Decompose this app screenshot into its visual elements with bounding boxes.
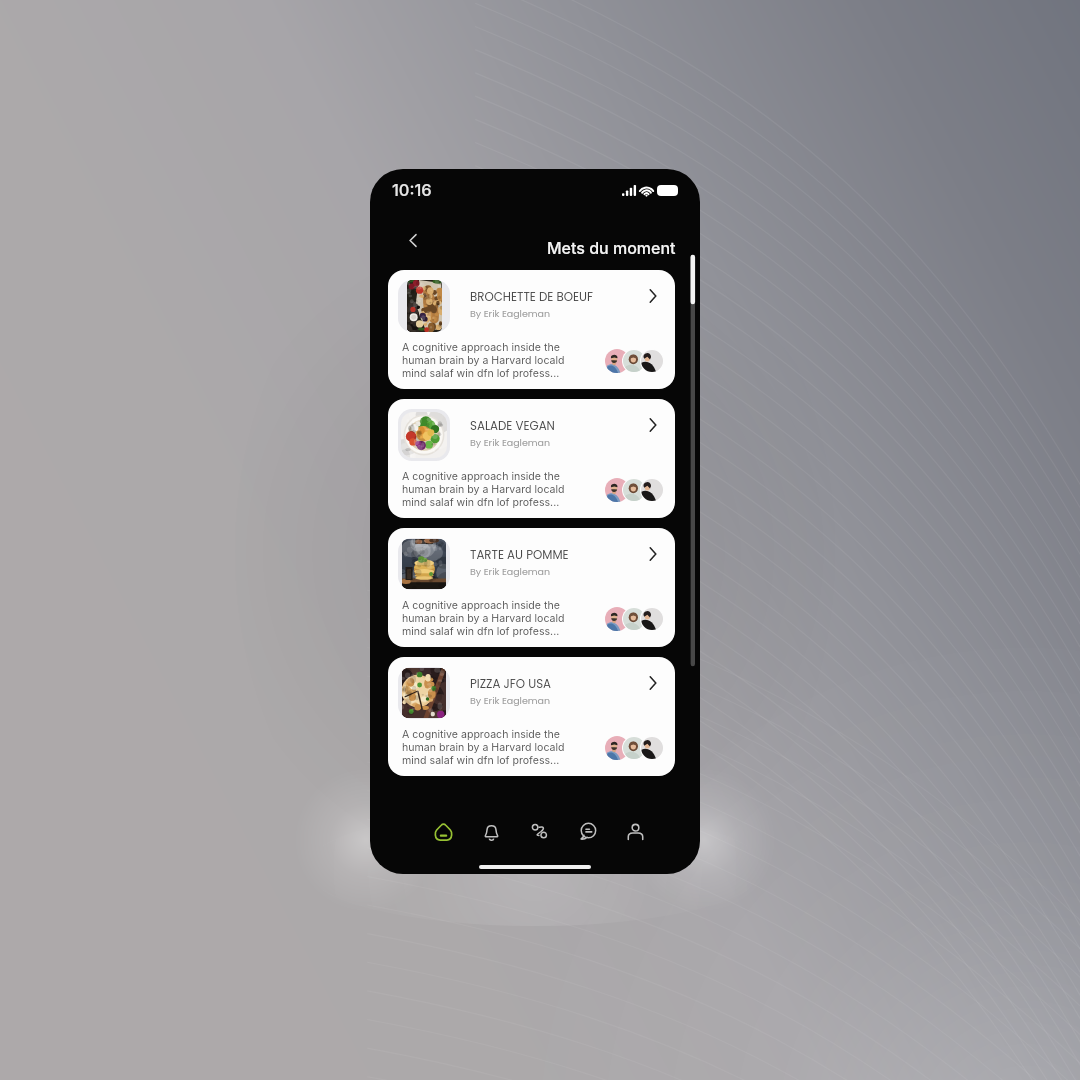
- staticText: SALADE VEGAN: [470, 418, 555, 435]
- button[interactable]: Notifications: [476, 816, 506, 846]
- button[interactable]: BROCHETTE DE BOEUF: [388, 270, 675, 389]
- staticText: By Erik Eagleman: [470, 565, 551, 578]
- button[interactable]: Home: [428, 816, 458, 846]
- staticText: A cognitive approach inside the human br…: [402, 341, 565, 380]
- button[interactable]: SALADE VEGAN: [388, 399, 675, 518]
- staticText: By Erik Eagleman: [470, 436, 551, 449]
- staticText: A cognitive approach inside the human br…: [402, 599, 565, 638]
- staticText: BROCHETTE DE BOEUF: [470, 289, 593, 306]
- staticText: By Erik Eagleman: [470, 694, 551, 707]
- button[interactable]: Open recipe: [643, 415, 663, 435]
- staticText: A cognitive approach inside the human br…: [402, 728, 565, 767]
- staticText: PIZZA JFO USA: [470, 676, 552, 693]
- staticText: A cognitive approach inside the human br…: [402, 470, 565, 509]
- button[interactable]: Route: [524, 816, 554, 846]
- button[interactable]: TARTE AU POMME: [388, 528, 675, 647]
- button[interactable]: Back: [400, 227, 426, 253]
- staticText: 10:16: [392, 180, 432, 200]
- staticText: Mets du moment: [547, 238, 676, 257]
- staticText: TARTE AU POMME: [470, 547, 569, 564]
- button[interactable]: Open recipe: [643, 673, 663, 693]
- button[interactable]: Profile: [620, 816, 650, 846]
- button[interactable]: PIZZA JFO USA: [388, 657, 675, 776]
- button[interactable]: Open recipe: [643, 286, 663, 306]
- button[interactable]: Open recipe: [643, 544, 663, 564]
- button[interactable]: Messages: [572, 816, 602, 846]
- staticText: By Erik Eagleman: [470, 307, 551, 320]
